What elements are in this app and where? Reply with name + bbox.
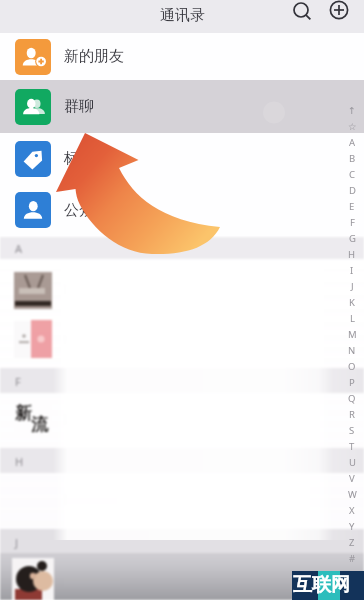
staticText: 新: [15, 403, 32, 424]
staticText: ↑: [348, 105, 356, 116]
button[interactable]: Jump to Y: [340, 518, 364, 534]
button[interactable]: Jump to U: [340, 454, 364, 470]
button[interactable]: 新的朋友: [0, 33, 364, 80]
staticText: R: [349, 408, 355, 421]
button[interactable]: Jump to J: [340, 278, 364, 294]
staticText: J: [351, 280, 354, 293]
staticText: E: [349, 200, 355, 213]
button[interactable]: Jump to P: [340, 374, 364, 390]
button[interactable]: Jump to G: [340, 230, 364, 246]
button[interactable]: Jump to R: [340, 406, 364, 422]
button[interactable]: Jump to T: [340, 438, 364, 454]
button[interactable]: Jump to I: [340, 262, 364, 278]
staticText: Q: [348, 392, 356, 405]
staticText: H: [348, 248, 356, 261]
staticText: Y: [349, 520, 355, 533]
button[interactable]: Jump to ☆: [340, 118, 364, 134]
staticText: 群聊: [64, 97, 94, 116]
button[interactable]: Jump to Z: [340, 534, 364, 550]
staticText: 通讯录: [160, 6, 205, 25]
staticText: I: [350, 264, 354, 277]
button[interactable]: Jump to Q: [340, 390, 364, 406]
staticText: C: [349, 168, 356, 181]
staticText: ☆: [348, 121, 357, 132]
staticText: 互联网: [293, 573, 350, 597]
button[interactable]: 标签: [0, 133, 364, 184]
staticText: F: [350, 216, 355, 229]
button[interactable]: Jump to C: [340, 166, 364, 182]
button[interactable]: Jump to H: [340, 246, 364, 262]
button[interactable]: Jump to F: [340, 214, 364, 230]
button[interactable]: 群聊: [0, 80, 364, 133]
button[interactable]: Jump to N: [340, 342, 364, 358]
button[interactable]: Jump to L: [340, 310, 364, 326]
staticText: O: [348, 360, 356, 373]
button[interactable]: Jump to W: [340, 486, 364, 502]
staticText: G: [349, 232, 356, 245]
button[interactable]: Jump to M: [340, 326, 364, 342]
button[interactable]: Jump to #: [340, 550, 364, 566]
button[interactable]: Jump to A: [340, 134, 364, 150]
staticText: 公众号: [64, 201, 109, 220]
button[interactable]: Jump to V: [340, 470, 364, 486]
staticText: F: [15, 374, 21, 389]
staticText: W: [348, 488, 357, 501]
staticText: #: [349, 552, 356, 565]
button[interactable]: Jump to K: [340, 294, 364, 310]
button[interactable]: Jump to ↑: [340, 102, 364, 118]
staticText: N: [348, 344, 356, 357]
staticText: Z: [349, 536, 355, 549]
staticText: B: [349, 152, 356, 165]
staticText: 流: [31, 414, 48, 435]
staticText: L: [350, 312, 355, 325]
staticText: H: [15, 454, 24, 469]
staticText: 标签: [64, 149, 94, 168]
staticText: P: [349, 376, 355, 389]
staticText: V: [349, 472, 355, 485]
staticText: T: [349, 440, 355, 453]
button[interactable]: Jump to D: [340, 182, 364, 198]
staticText: U: [349, 456, 356, 469]
staticText: D: [349, 184, 356, 197]
staticText: J: [15, 535, 19, 550]
staticText: 新的朋友: [64, 47, 124, 66]
button[interactable]: Jump to B: [340, 150, 364, 166]
staticText: S: [349, 424, 355, 437]
button[interactable]: 公众号: [0, 184, 364, 236]
staticText: X: [349, 504, 355, 517]
button[interactable]: Search: [287, 0, 315, 24]
button[interactable]: Jump to O: [340, 358, 364, 374]
button[interactable]: Jump to X: [340, 502, 364, 518]
button[interactable]: Jump to S: [340, 422, 364, 438]
staticText: A: [349, 136, 356, 149]
button[interactable]: Add: [325, 0, 353, 24]
staticText: A: [15, 241, 23, 256]
staticText: M: [348, 328, 357, 341]
button[interactable]: Jump to E: [340, 198, 364, 214]
staticText: K: [349, 296, 355, 309]
